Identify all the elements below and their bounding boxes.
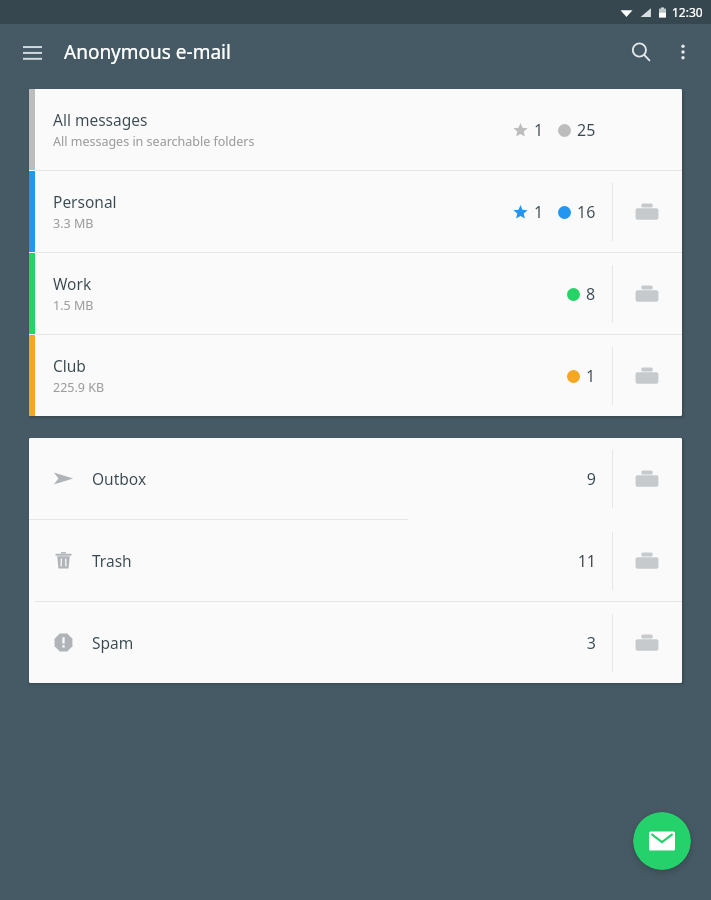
staticText: 11	[577, 550, 596, 572]
button[interactable]: Folder options for Work	[623, 270, 671, 318]
staticText: Personal	[53, 191, 117, 212]
staticText: Club	[53, 355, 86, 376]
staticText: 3	[586, 632, 596, 654]
staticText: 1.5 MB	[53, 297, 94, 314]
staticText: 12:30	[672, 4, 703, 20]
button[interactable]: More options	[663, 32, 703, 72]
button[interactable]: Folder options for Outbox	[623, 455, 671, 503]
staticText: Spam	[92, 632, 134, 653]
staticText: 1	[534, 119, 544, 141]
staticText: 16	[577, 201, 596, 223]
staticText: 8	[586, 283, 596, 305]
button[interactable]: Compose new e-mail	[633, 812, 691, 870]
staticText: 25	[577, 119, 596, 141]
button[interactable]: Club	[29, 335, 682, 416]
staticText: Outbox	[92, 468, 147, 489]
staticText: 225.9 KB	[53, 379, 105, 396]
button[interactable]: Folder options for Club	[623, 352, 671, 400]
staticText: 1	[586, 365, 596, 387]
staticText: Anonymous e-mail	[64, 39, 231, 65]
button[interactable]: Outbox	[29, 438, 682, 519]
button[interactable]: Personal	[29, 171, 682, 252]
staticText: 1	[534, 201, 544, 223]
staticText: 3.3 MB	[53, 215, 94, 232]
button[interactable]: Work	[29, 253, 682, 334]
button[interactable]: Spam	[29, 602, 682, 683]
button[interactable]: Open navigation menu	[12, 32, 52, 72]
button[interactable]: All messages	[29, 89, 682, 170]
button[interactable]: Trash	[29, 520, 682, 601]
staticText: 9	[586, 468, 596, 490]
button[interactable]: Folder options for Personal	[623, 188, 671, 236]
staticText: Work	[53, 273, 92, 294]
button[interactable]: Folder options for Trash	[623, 537, 671, 585]
staticText: All messages in searchable folders	[53, 133, 255, 150]
button[interactable]: Search	[619, 30, 663, 74]
button[interactable]: Folder options for Spam	[623, 619, 671, 667]
staticText: All messages	[53, 109, 148, 130]
staticText: Trash	[92, 550, 132, 571]
